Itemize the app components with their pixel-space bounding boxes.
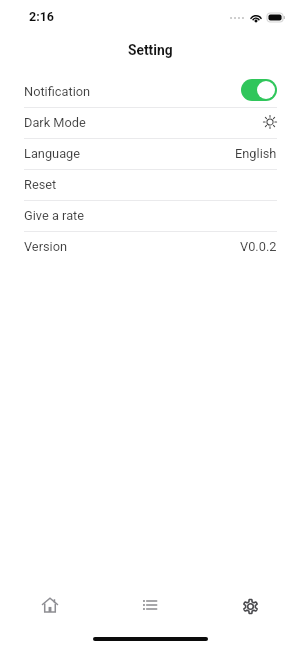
- button[interactable]: Notification: [24, 77, 277, 108]
- staticText: Dark Mode: [24, 115, 86, 130]
- staticText: Give a rate: [24, 208, 85, 223]
- button[interactable]: Notification toggle: [241, 79, 277, 101]
- staticText: V0.0.2: [240, 239, 277, 254]
- staticText: Notification: [24, 84, 91, 99]
- staticText: 2:16: [29, 9, 55, 24]
- button[interactable]: Dark Mode: [255, 111, 277, 133]
- button[interactable]: Version: [24, 232, 277, 262]
- staticText: Language: [24, 146, 81, 161]
- button[interactable]: Give a rate: [24, 201, 277, 232]
- staticText: Version: [24, 239, 68, 254]
- staticText: English: [235, 146, 277, 161]
- button[interactable]: Settings: [200, 580, 300, 628]
- button[interactable]: Language: [24, 139, 277, 170]
- staticText: Reset: [24, 177, 57, 192]
- staticText: Setting: [128, 42, 173, 58]
- button[interactable]: Home: [0, 580, 100, 628]
- button[interactable]: List: [100, 580, 200, 628]
- button[interactable]: Dark Mode: [24, 108, 277, 139]
- button[interactable]: Reset: [24, 170, 277, 201]
